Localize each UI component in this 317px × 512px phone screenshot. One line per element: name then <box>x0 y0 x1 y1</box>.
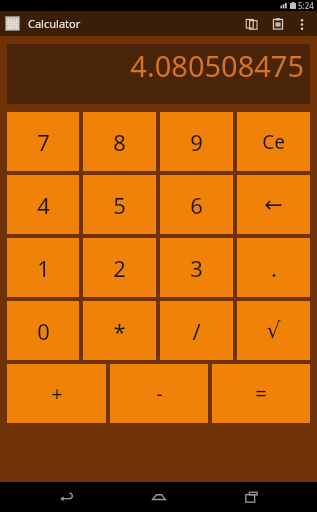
staticText: Ce <box>262 129 285 155</box>
button[interactable]: ← <box>237 175 310 234</box>
button[interactable]: / <box>160 301 233 360</box>
button[interactable]: 2 <box>83 238 156 297</box>
button[interactable]: 5 <box>83 175 156 234</box>
staticText: 6 <box>190 190 203 220</box>
button[interactable]: 0 <box>7 301 79 360</box>
button[interactable]: + <box>7 364 106 423</box>
button[interactable]: √ <box>237 301 310 360</box>
button[interactable]: Copy <box>239 11 265 36</box>
button[interactable]: * <box>83 301 156 360</box>
staticText: 4.080508475 <box>130 46 304 85</box>
button[interactable]: More options <box>291 13 313 35</box>
staticText: 5:24 <box>298 0 314 11</box>
staticText: 5 <box>113 190 126 220</box>
staticText: 1 <box>37 253 50 283</box>
button[interactable]: . <box>237 238 310 297</box>
button[interactable]: Home <box>142 482 176 512</box>
button[interactable]: 6 <box>160 175 233 234</box>
button[interactable]: 8 <box>83 112 156 171</box>
button[interactable]: 9 <box>160 112 233 171</box>
staticText: . <box>271 253 277 283</box>
staticText: 0 <box>37 316 50 346</box>
staticText: 7 <box>37 127 50 157</box>
button[interactable]: = <box>212 364 310 423</box>
staticText: ← <box>264 192 283 218</box>
staticText: * <box>113 316 126 346</box>
button[interactable]: Back <box>50 482 84 512</box>
staticText: + <box>51 380 63 407</box>
staticText: 8 <box>113 127 126 157</box>
staticText: = <box>255 380 267 407</box>
staticText: √ <box>266 318 281 344</box>
button[interactable]: Ce <box>237 112 310 171</box>
staticText: Calculator <box>28 16 81 31</box>
button[interactable]: 3 <box>160 238 233 297</box>
button[interactable]: Paste <box>265 11 291 36</box>
button[interactable]: - <box>110 364 208 423</box>
staticText: 3 <box>190 253 203 283</box>
staticText: 4 <box>37 190 50 220</box>
staticText: 9 <box>190 127 203 157</box>
staticText: / <box>192 316 201 346</box>
button[interactable]: 1 <box>7 238 79 297</box>
staticText: 2 <box>113 253 126 283</box>
staticText: - <box>156 380 163 407</box>
button[interactable]: Recent apps <box>234 482 268 512</box>
button[interactable]: 4 <box>7 175 79 234</box>
button[interactable]: 7 <box>7 112 79 171</box>
